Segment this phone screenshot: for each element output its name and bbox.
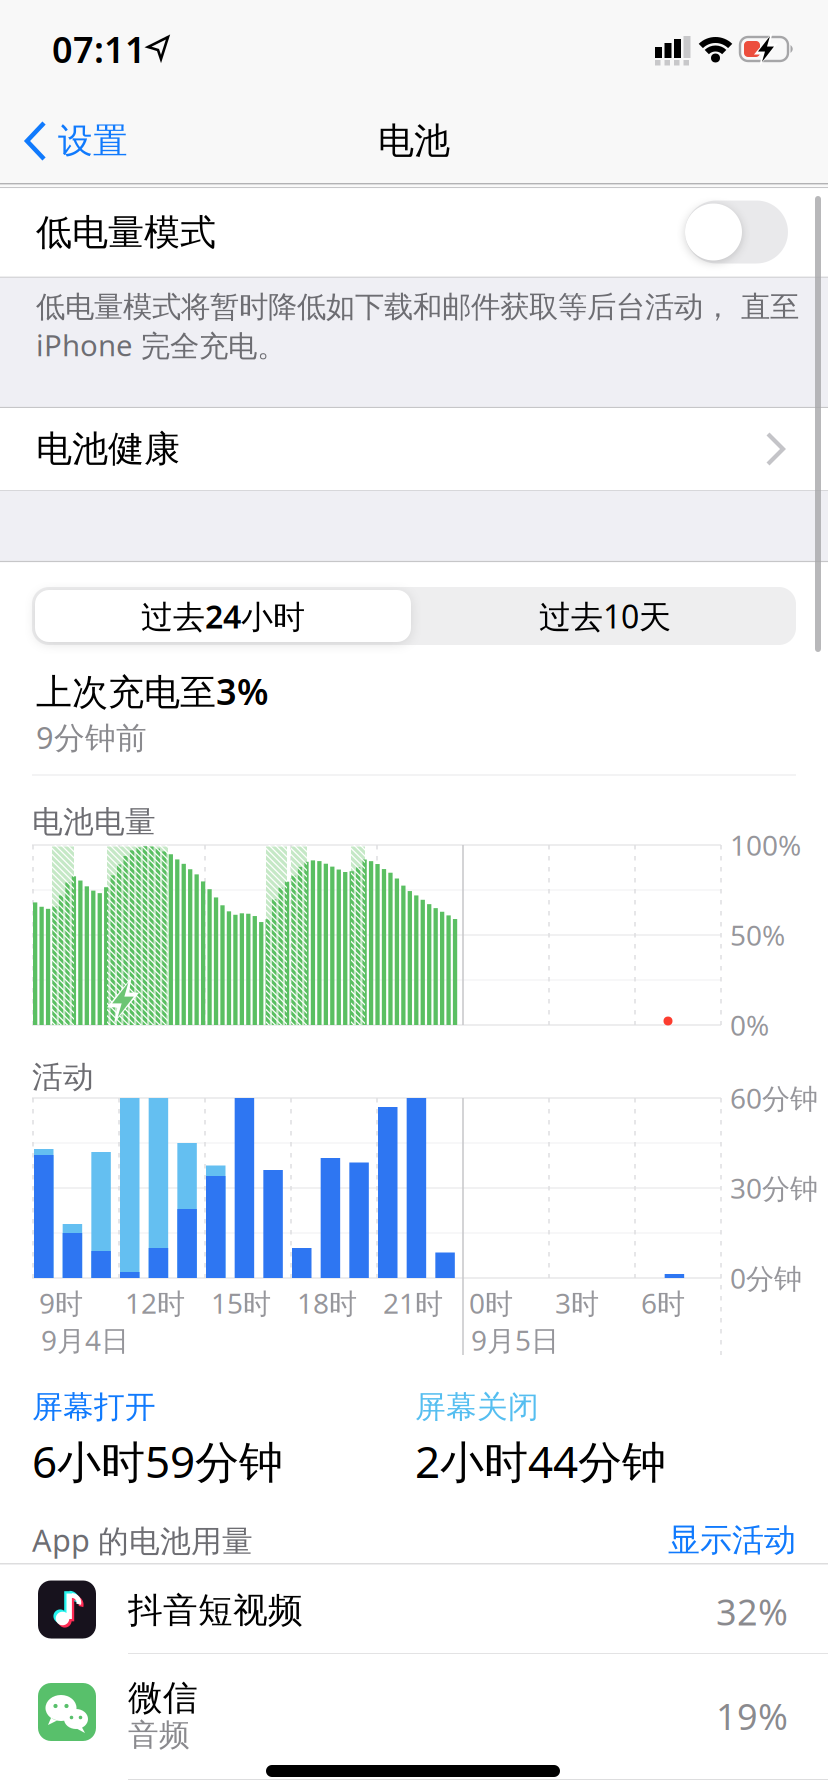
staticText: 低电量模式: [36, 210, 216, 255]
staticText: 音频: [128, 1716, 190, 1754]
button[interactable]: 返回设置: [20, 105, 190, 177]
button[interactable]: 过去10天: [417, 590, 793, 642]
staticText: 6小时59分钟: [32, 1432, 283, 1490]
staticText: 3时: [555, 1284, 599, 1322]
button[interactable]: 抖音短视频: [0, 1564, 828, 1653]
staticText: 0%: [730, 1006, 769, 1044]
staticText: 18时: [297, 1284, 357, 1322]
button[interactable]: 微信: [0, 1654, 828, 1779]
staticText: 0时: [469, 1284, 513, 1322]
staticText: 电池: [378, 119, 450, 163]
staticText: 21时: [383, 1284, 443, 1322]
staticText: iPhone 完全充电。: [36, 325, 286, 364]
staticText: 过去24小时: [141, 595, 305, 637]
staticText: 上次充电至3%: [36, 667, 269, 715]
staticText: 抖音短视频: [128, 1589, 303, 1632]
staticText: 50%: [730, 916, 785, 954]
staticText: 屏幕关闭: [415, 1388, 539, 1426]
staticText: 2小时44分钟: [415, 1432, 666, 1490]
button[interactable]: 过去24小时: [35, 590, 411, 642]
staticText: 9时: [39, 1284, 83, 1322]
button[interactable]: 低电量模式: [0, 188, 828, 276]
staticText: 9月4日: [41, 1321, 129, 1359]
staticText: 显示活动: [668, 1520, 796, 1560]
button[interactable]: 显示活动: [496, 1520, 796, 1560]
staticText: 100%: [730, 826, 801, 864]
staticText: 活动: [32, 1058, 94, 1096]
staticText: 32%: [716, 1588, 788, 1635]
staticText: 过去10天: [539, 595, 671, 637]
staticText: 9月5日: [471, 1321, 559, 1359]
staticText: 6时: [641, 1284, 685, 1322]
staticText: App 的电池用量: [32, 1520, 253, 1560]
staticText: 12时: [125, 1284, 185, 1322]
staticText: 60分钟: [730, 1079, 818, 1117]
button[interactable]: 电池健康: [0, 408, 828, 490]
staticText: 电池健康: [36, 427, 180, 471]
staticText: 低电量模式将暂时降低如下载和邮件获取等后台活动， 直至: [36, 289, 799, 325]
staticText: 15时: [211, 1284, 271, 1322]
staticText: 07:11: [52, 25, 146, 73]
staticText: 屏幕打开: [32, 1388, 156, 1426]
staticText: 19%: [716, 1692, 788, 1740]
staticText: 30分钟: [730, 1169, 818, 1207]
staticText: 0分钟: [730, 1259, 802, 1297]
staticText: 微信: [128, 1677, 198, 1719]
staticText: 电池电量: [32, 803, 156, 841]
staticText: 设置: [58, 120, 128, 162]
staticText: 9分钟前: [36, 717, 147, 757]
